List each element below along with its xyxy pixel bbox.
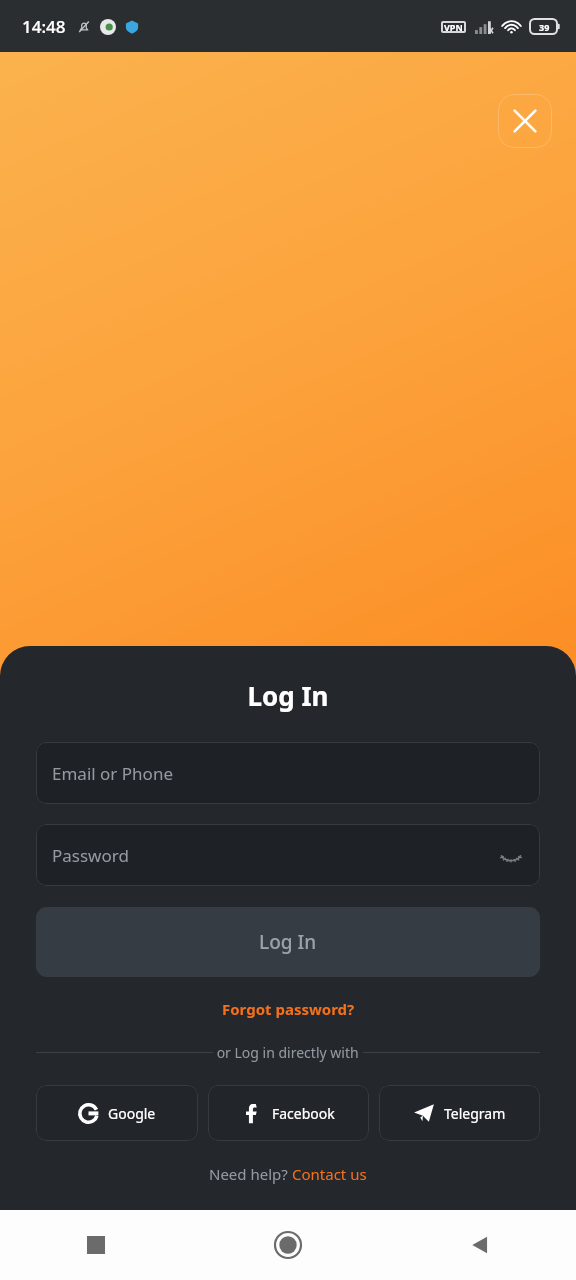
staticText: 14:48 — [22, 15, 66, 38]
staticText: Email or Phone — [52, 762, 173, 785]
button[interactable]: Log In — [36, 907, 540, 977]
button[interactable]: Google — [36, 1085, 198, 1141]
button[interactable]: Back — [456, 1221, 504, 1269]
other: Show password — [498, 842, 524, 868]
button[interactable]: Email or Phone — [36, 742, 540, 804]
button[interactable]: Close — [498, 94, 552, 148]
staticText: Contact us — [292, 1164, 367, 1184]
staticText: Log In — [259, 929, 317, 955]
staticText: Password — [52, 844, 129, 867]
staticText: Telegram — [444, 1104, 506, 1123]
button[interactable]: Password — [36, 824, 540, 886]
staticText: Google — [108, 1104, 156, 1123]
button[interactable]: Home — [264, 1221, 312, 1269]
staticText: Need help? — [209, 1164, 292, 1184]
staticText: or Log in directly with — [213, 1043, 363, 1062]
button[interactable]: Telegram — [379, 1085, 540, 1141]
staticText: Log In — [36, 678, 540, 713]
staticText: Facebook — [272, 1104, 335, 1123]
staticText: Forgot password? — [222, 999, 355, 1019]
button[interactable]: Facebook — [208, 1085, 369, 1141]
button[interactable]: Need help? — [36, 1164, 540, 1184]
staticText: VPN — [444, 21, 463, 33]
button[interactable]: Recents — [72, 1221, 120, 1269]
button[interactable]: Forgot password? — [36, 999, 540, 1019]
staticText: 39 — [539, 21, 550, 33]
